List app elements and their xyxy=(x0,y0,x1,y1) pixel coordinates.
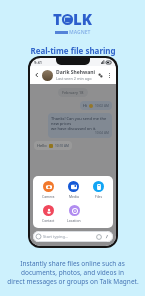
button[interactable]: Emoji xyxy=(96,234,102,240)
staticText: 10:10 AM xyxy=(55,144,69,148)
staticText: Files xyxy=(95,194,103,199)
staticText: Start typing... xyxy=(43,234,69,239)
staticText: Last seen 2 min ago xyxy=(56,76,92,81)
staticText: and collaboration xyxy=(37,57,108,68)
staticText: Media xyxy=(69,194,79,199)
staticText: documents, photos, and videos in xyxy=(21,268,124,277)
staticText: 9:41 xyxy=(34,60,42,65)
staticText: Thanks! Can you send me the new prices xyxy=(51,116,109,126)
staticText: 10:04 AM xyxy=(95,131,109,135)
staticText: Contact xyxy=(42,218,55,223)
staticText: Real-time file sharing xyxy=(30,45,116,56)
button[interactable]: Files xyxy=(92,180,105,200)
staticText: 10:02 AM xyxy=(95,104,109,108)
button[interactable]: Location xyxy=(66,204,82,224)
button[interactable]: Call xyxy=(96,71,105,80)
staticText: Hi xyxy=(83,103,87,108)
button[interactable]: Attach xyxy=(104,234,110,240)
staticText: LK xyxy=(73,9,93,29)
staticText: direct messages or groups on Talk Magnet… xyxy=(7,277,139,286)
staticText: Darik Shehwani xyxy=(56,69,96,76)
button[interactable]: Contact xyxy=(41,204,56,224)
button[interactable]: Start typing... xyxy=(33,231,113,242)
staticText: T xyxy=(53,9,62,29)
staticText: we have discussed on it. xyxy=(51,126,97,131)
staticText: February 18 xyxy=(62,90,84,95)
button[interactable]: Camera xyxy=(41,180,56,200)
staticText: Hello xyxy=(37,143,47,148)
staticText: Camera xyxy=(42,194,55,199)
staticText: Location xyxy=(67,218,81,223)
button[interactable]: Media xyxy=(67,180,80,200)
button[interactable]: Back xyxy=(33,71,41,79)
staticText: MAGNET xyxy=(69,29,91,36)
staticText: Instantly share files online such as xyxy=(20,259,125,268)
button[interactable]: More options xyxy=(105,71,113,79)
